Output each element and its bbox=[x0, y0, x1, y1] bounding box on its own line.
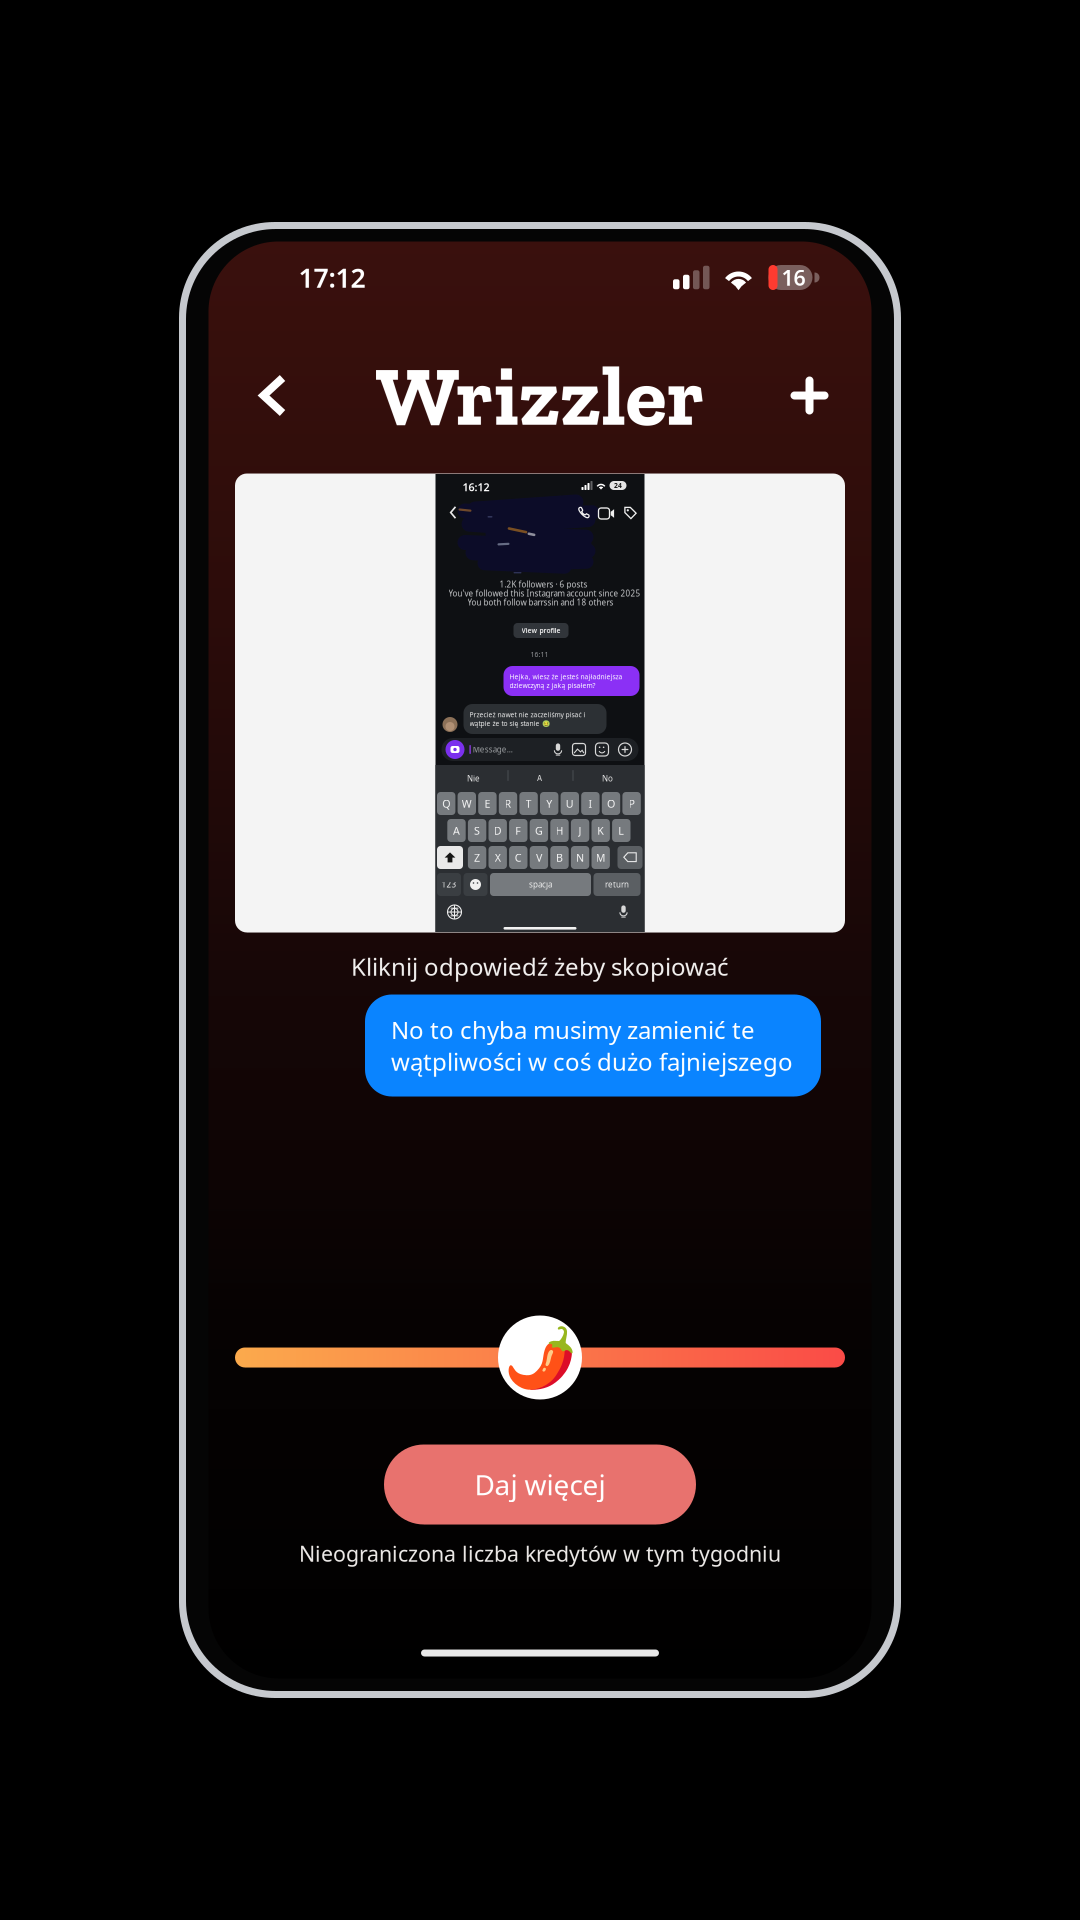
staticText: M bbox=[596, 850, 606, 865]
staticText: L bbox=[618, 823, 624, 838]
staticText: No to chyba musimy zamienić te wątpliwoś… bbox=[391, 1014, 793, 1077]
staticText: C bbox=[515, 850, 522, 865]
staticText: Nieograniczona liczba kredytów w tym tyg… bbox=[299, 1539, 781, 1568]
staticText: Message... bbox=[473, 744, 513, 755]
staticText: Daj więcej bbox=[474, 1466, 605, 1503]
staticText: View profile bbox=[521, 626, 560, 635]
staticText: A bbox=[453, 823, 460, 838]
staticText: I bbox=[588, 796, 592, 811]
staticText: D bbox=[494, 823, 502, 838]
staticText: You both follow barrssin and 18 others bbox=[467, 597, 613, 608]
staticText: O bbox=[607, 796, 615, 811]
staticText: P bbox=[629, 796, 635, 811]
staticText: 16:12 bbox=[462, 480, 489, 494]
staticText: Nie bbox=[467, 773, 480, 784]
staticText: S bbox=[474, 823, 480, 838]
staticText: spacja bbox=[529, 879, 552, 890]
staticText: J bbox=[579, 823, 582, 838]
staticText: G bbox=[535, 823, 543, 838]
staticText: T bbox=[526, 796, 532, 811]
staticText: Kliknij odpowiedź żeby skopiować bbox=[351, 951, 729, 982]
staticText: Y bbox=[546, 796, 552, 811]
staticText: W bbox=[462, 796, 472, 811]
button[interactable]: Spice level bbox=[498, 1315, 582, 1399]
staticText: N bbox=[576, 850, 584, 865]
staticText: Przecież nawet nie zaczeliśmy pisać i wą… bbox=[469, 710, 585, 728]
button[interactable]: Add bbox=[772, 356, 846, 435]
button[interactable]: Daj więcej bbox=[384, 1444, 696, 1524]
staticText: 16 bbox=[781, 263, 805, 292]
staticText: No bbox=[602, 773, 613, 784]
staticText: 17:12 bbox=[298, 260, 365, 295]
staticText: 123 bbox=[441, 879, 456, 890]
staticText: You've followed this Instagram account s… bbox=[448, 588, 640, 599]
staticText: A bbox=[537, 773, 542, 784]
staticText: R bbox=[504, 796, 511, 811]
staticText: Hejka, wiesz że jesteś najładniejsza dzi… bbox=[509, 672, 622, 690]
staticText: 16:11 bbox=[530, 650, 548, 659]
staticText: X bbox=[495, 850, 501, 865]
button[interactable]: View profile bbox=[513, 623, 568, 638]
staticText: Wrizzler bbox=[375, 344, 704, 447]
staticText: Q bbox=[442, 796, 450, 811]
staticText: V bbox=[536, 850, 542, 865]
staticText: K bbox=[597, 823, 604, 838]
staticText: E bbox=[484, 796, 490, 811]
staticText: return bbox=[605, 879, 629, 890]
staticText: Z bbox=[474, 850, 480, 865]
staticText: H bbox=[555, 823, 563, 838]
button[interactable]: No to chyba musimy zamienić te wątpliwoś… bbox=[365, 994, 821, 1096]
staticText: 24 bbox=[614, 481, 622, 490]
staticText: U bbox=[566, 796, 574, 811]
button[interactable]: Back bbox=[238, 356, 304, 435]
staticText: F bbox=[515, 823, 521, 838]
staticText: 🌶 bbox=[503, 1323, 576, 1392]
staticText: B bbox=[556, 850, 563, 865]
staticText: 1.2K followers · 6 posts bbox=[499, 579, 587, 590]
